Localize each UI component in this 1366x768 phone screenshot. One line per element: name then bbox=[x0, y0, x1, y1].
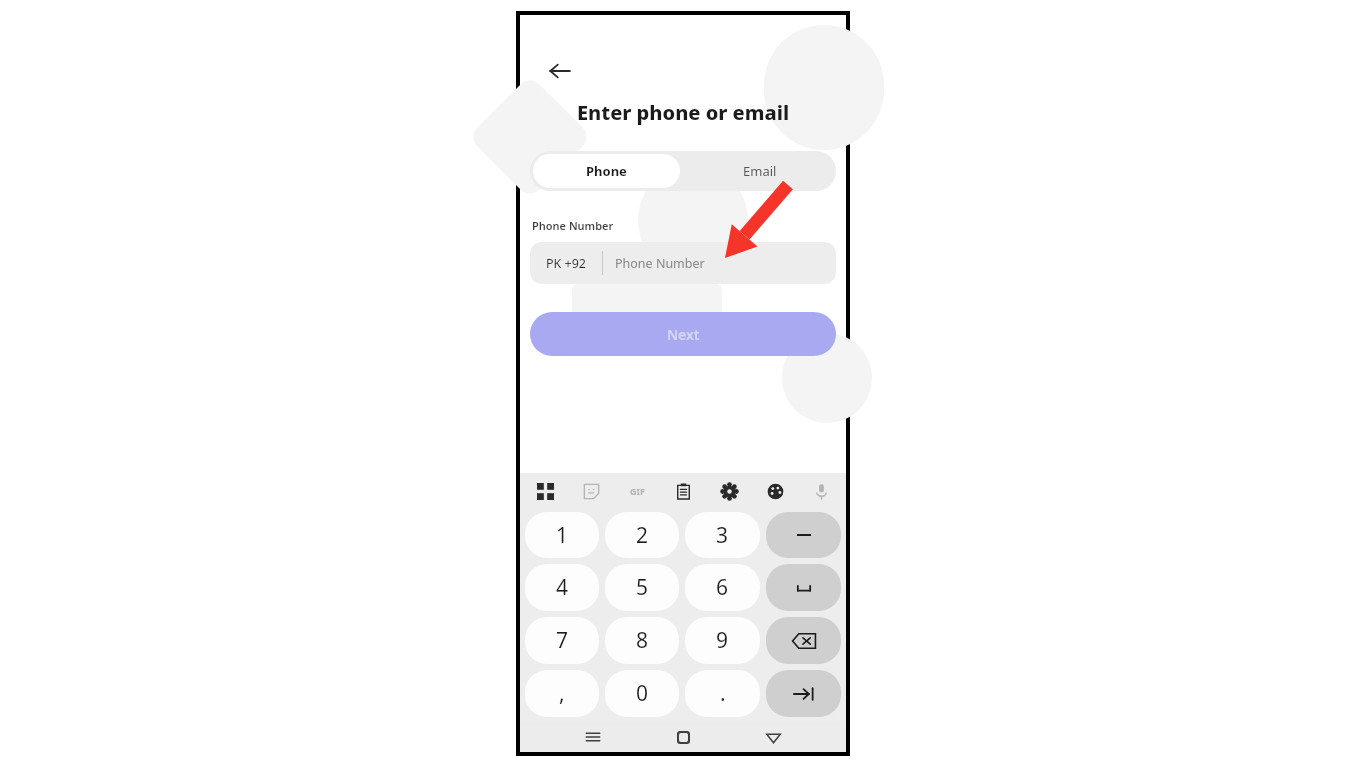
staticText: 1 bbox=[556, 521, 569, 550]
button[interactable]: Settings bbox=[714, 476, 744, 506]
button[interactable]: Backspace bbox=[766, 617, 841, 664]
staticText: 6 bbox=[716, 573, 729, 602]
button[interactable]: Back bbox=[542, 53, 578, 89]
button[interactable]: Themes bbox=[760, 476, 790, 506]
button[interactable]: 0 bbox=[605, 670, 679, 717]
button[interactable]: Phone bbox=[533, 154, 680, 188]
staticText: 8 bbox=[636, 626, 649, 655]
button[interactable]: Back bbox=[756, 722, 790, 752]
button[interactable]: Stickers bbox=[576, 476, 606, 506]
staticText: Email bbox=[743, 162, 777, 180]
staticText: 0 bbox=[636, 679, 649, 708]
staticText: GIF bbox=[630, 485, 645, 497]
staticText: 3 bbox=[716, 521, 729, 550]
staticText: . bbox=[720, 679, 726, 708]
staticText: Phone bbox=[586, 162, 627, 180]
button[interactable]: Home bbox=[666, 722, 700, 752]
button[interactable]: 4 bbox=[525, 564, 599, 611]
button[interactable]: 7 bbox=[525, 617, 599, 664]
button[interactable]: Minus bbox=[766, 512, 841, 558]
button[interactable]: 8 bbox=[605, 617, 679, 664]
button[interactable]: 2 bbox=[605, 512, 679, 558]
button[interactable]: GIF bbox=[622, 476, 652, 506]
button[interactable]: , bbox=[525, 670, 599, 717]
button[interactable]: 9 bbox=[685, 617, 760, 664]
button[interactable]: . bbox=[685, 670, 760, 717]
button[interactable]: 1 bbox=[525, 512, 599, 558]
staticText: Enter phone or email bbox=[520, 99, 846, 126]
staticText: Next bbox=[667, 325, 700, 344]
staticText: 7 bbox=[556, 626, 569, 655]
button[interactable]: Space bbox=[766, 564, 841, 611]
button[interactable]: 3 bbox=[685, 512, 760, 558]
staticText: 2 bbox=[636, 521, 649, 550]
staticText: Phone Number bbox=[615, 255, 705, 272]
button[interactable]: Tab bbox=[766, 670, 841, 717]
staticText: PK +92 bbox=[546, 255, 587, 272]
staticText: 9 bbox=[716, 626, 729, 655]
button[interactable]: Email bbox=[683, 151, 836, 191]
staticText: 5 bbox=[636, 573, 649, 602]
button[interactable]: Clipboard bbox=[668, 476, 698, 506]
button[interactable]: Voice input bbox=[806, 476, 836, 506]
button[interactable]: 5 bbox=[605, 564, 679, 611]
button[interactable]: Recents bbox=[576, 722, 610, 752]
staticText: 4 bbox=[556, 573, 569, 602]
staticText: Phone Number bbox=[532, 218, 614, 233]
button[interactable]: PK +92 bbox=[530, 242, 836, 284]
staticText: , bbox=[559, 679, 565, 708]
button[interactable]: 6 bbox=[685, 564, 760, 611]
button[interactable]: Next bbox=[530, 312, 836, 356]
button[interactable]: Keyboard switcher bbox=[530, 476, 560, 506]
